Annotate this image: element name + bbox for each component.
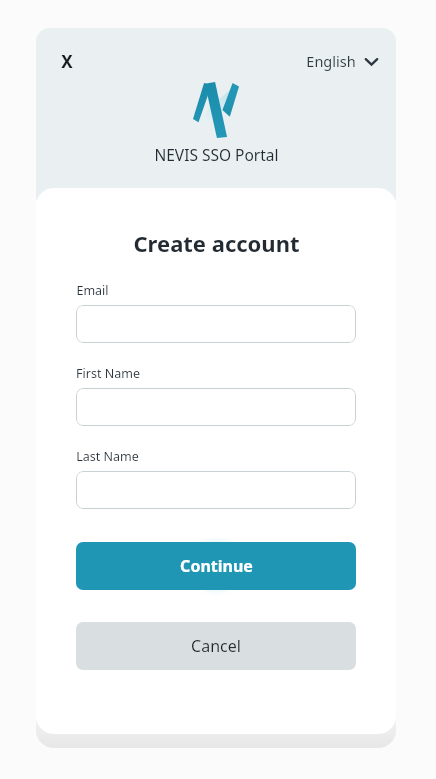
button[interactable]: Continue xyxy=(76,542,356,590)
button[interactable]: English xyxy=(302,47,382,75)
staticText: NEVIS SSO Portal xyxy=(154,144,279,165)
staticText: Create account xyxy=(133,228,300,258)
staticText: Continue xyxy=(180,555,253,577)
staticText: Cancel xyxy=(191,635,241,657)
staticText: X xyxy=(61,50,73,73)
staticText: English xyxy=(306,51,356,71)
button[interactable]: Cancel xyxy=(76,622,356,670)
staticText: Last Name xyxy=(76,448,139,465)
staticText: Email xyxy=(76,282,109,299)
button[interactable] xyxy=(76,388,356,426)
button[interactable] xyxy=(76,471,356,509)
staticText: First Name xyxy=(76,365,140,382)
button[interactable]: Close xyxy=(50,44,84,78)
button[interactable] xyxy=(76,305,356,343)
